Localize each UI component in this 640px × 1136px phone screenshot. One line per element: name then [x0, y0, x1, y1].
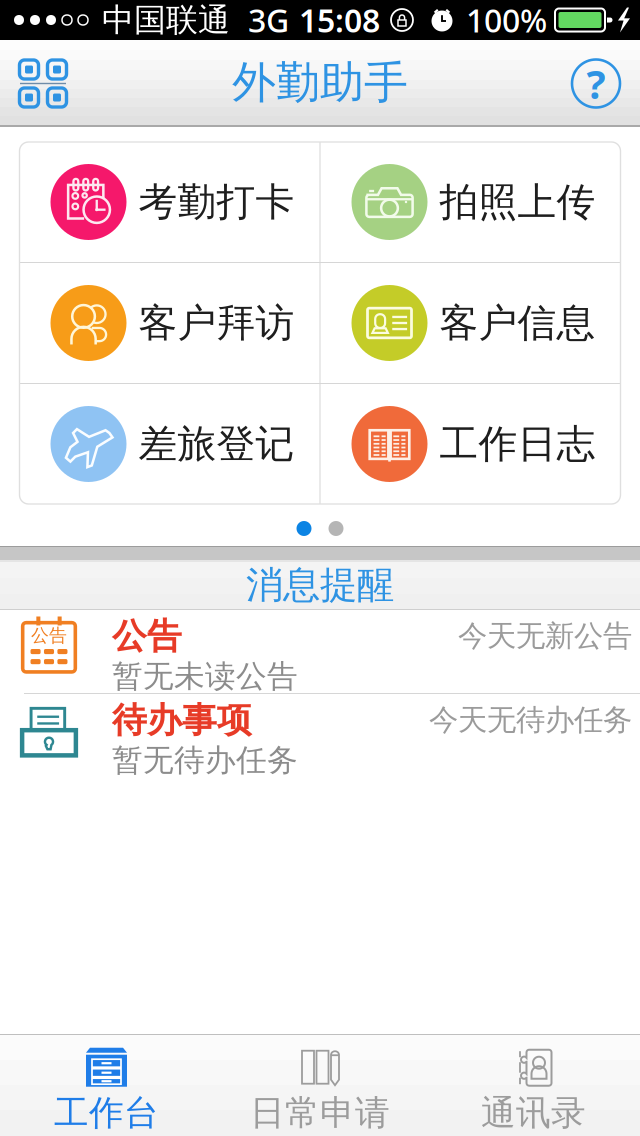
- button[interactable]: 考勤打卡: [19, 142, 319, 262]
- staticText: 暂无待办任务: [112, 741, 298, 779]
- button[interactable]: 工作日志: [320, 384, 620, 504]
- staticText: 公告: [33, 627, 65, 646]
- staticText: 工作台: [54, 1092, 159, 1134]
- staticText: 待办事项: [112, 699, 252, 741]
- button[interactable]: 通讯录: [427, 1035, 640, 1136]
- staticText: 100%: [466, 0, 547, 41]
- staticText: 今天无新公告: [458, 618, 632, 654]
- button[interactable]: 日常申请: [213, 1035, 427, 1136]
- staticText: 客户信息: [439, 299, 595, 347]
- staticText: 客户拜访: [138, 299, 294, 347]
- button[interactable]: 工作台: [0, 1035, 213, 1136]
- button[interactable]: 拍照上传: [320, 142, 620, 262]
- staticText: 工作日志: [439, 420, 595, 468]
- button[interactable]: 客户信息: [320, 263, 620, 383]
- button[interactable]: 客户拜访: [19, 263, 319, 383]
- staticText: 3G: [248, 0, 289, 41]
- staticText: 通讯录: [481, 1092, 586, 1134]
- staticText: 拍照上传: [439, 178, 595, 226]
- staticText: 15:08: [299, 0, 380, 41]
- button[interactable]: 差旅登记: [19, 384, 319, 504]
- staticText: ?: [586, 57, 605, 110]
- button[interactable]: Help: [552, 40, 640, 127]
- staticText: 今天无待办任务: [429, 702, 632, 738]
- button[interactable]: 待办事项: [0, 694, 640, 777]
- staticText: 差旅登记: [138, 420, 294, 468]
- button[interactable]: 公告: [0, 610, 640, 693]
- staticText: 考勤打卡: [138, 178, 294, 226]
- staticText: 消息提醒: [246, 562, 394, 608]
- staticText: 日常申请: [250, 1092, 390, 1134]
- button[interactable]: Modules: [0, 40, 86, 127]
- staticText: 外勤助手: [232, 55, 408, 109]
- staticText: 中国联通: [102, 0, 230, 40]
- staticText: 暂无未读公告: [112, 657, 298, 695]
- staticText: 公告: [112, 615, 182, 657]
